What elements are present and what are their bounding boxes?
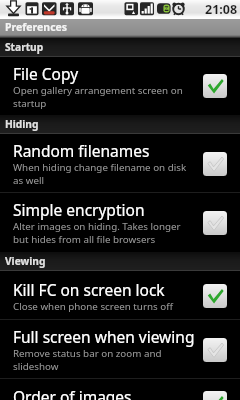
other: Status bar	[0, 0, 240, 19]
button[interactable]: Simple encryption	[0, 193, 240, 252]
staticText: Full screen when viewing	[13, 326, 190, 347]
staticText: Preferences	[5, 20, 68, 34]
staticText: Kill FC on screen lock	[13, 279, 165, 300]
staticText: Simple encryption	[13, 199, 145, 220]
staticText: Hiding	[5, 117, 39, 131]
button[interactable]: Kill FC on screen lock	[0, 271, 240, 320]
staticText: but hides from all file browsers	[13, 233, 156, 246]
staticText: Close when phone screen turns off	[13, 300, 173, 313]
button[interactable]: Full screen when viewing	[0, 320, 240, 379]
staticText: slideshow	[13, 360, 59, 373]
staticText: Alter images on hiding. Takes longer	[13, 220, 181, 233]
button[interactable]: Random filenames	[0, 134, 240, 193]
button[interactable]: Startup	[0, 38, 240, 57]
staticText: Random filenames	[13, 140, 150, 161]
button[interactable]: Hiding	[0, 115, 240, 134]
button[interactable]: Order of images	[0, 379, 240, 400]
staticText: Remove status bar on zoom and	[13, 347, 162, 360]
staticText: startup	[13, 97, 47, 110]
staticText: Viewing	[5, 254, 46, 268]
staticText: Startup	[5, 40, 44, 54]
staticText: File Copy	[13, 63, 79, 84]
staticText: Open gallery arrangement screen on	[13, 84, 183, 97]
staticText: as well	[13, 174, 45, 187]
button[interactable]: Viewing	[0, 252, 240, 271]
staticText: When hiding change filename on disk	[13, 161, 187, 174]
staticText: 21:08	[205, 1, 238, 18]
staticText: Order of images	[13, 386, 132, 400]
button[interactable]: File Copy	[0, 57, 240, 115]
